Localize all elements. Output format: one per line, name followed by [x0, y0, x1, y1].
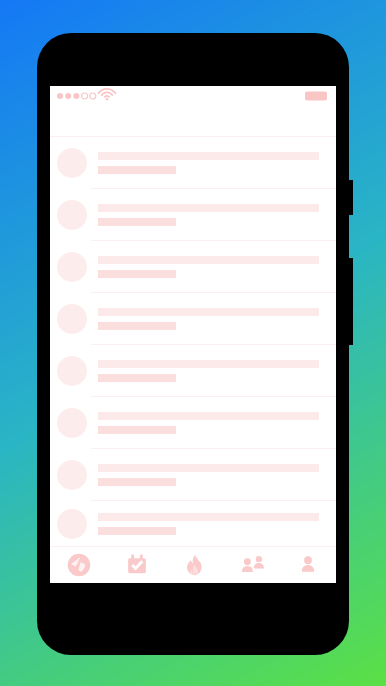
button[interactable] [50, 189, 336, 241]
button[interactable]: Profile [279, 547, 336, 583]
button[interactable]: Events [108, 547, 165, 583]
button[interactable] [50, 449, 336, 501]
button[interactable] [50, 137, 336, 189]
button[interactable]: Trending [165, 547, 222, 583]
button[interactable] [50, 293, 336, 345]
button[interactable]: Groups [222, 547, 279, 583]
button[interactable] [50, 345, 336, 397]
button[interactable]: Discover [50, 547, 108, 583]
button[interactable] [50, 241, 336, 293]
button[interactable] [50, 397, 336, 449]
button[interactable] [50, 501, 336, 546]
